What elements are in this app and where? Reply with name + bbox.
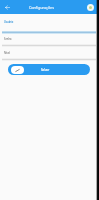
- staticText: Salvar: [41, 68, 50, 72]
- staticText: Nível: [4, 51, 11, 54]
- button[interactable]: Account: [84, 1, 96, 13]
- staticText: Senha: [4, 37, 12, 40]
- staticText: Configurações: [29, 5, 54, 10]
- button[interactable]: Back: [1, 1, 13, 13]
- button[interactable]: Salvar: [8, 64, 90, 75]
- staticText: Usuário: [4, 20, 14, 23]
